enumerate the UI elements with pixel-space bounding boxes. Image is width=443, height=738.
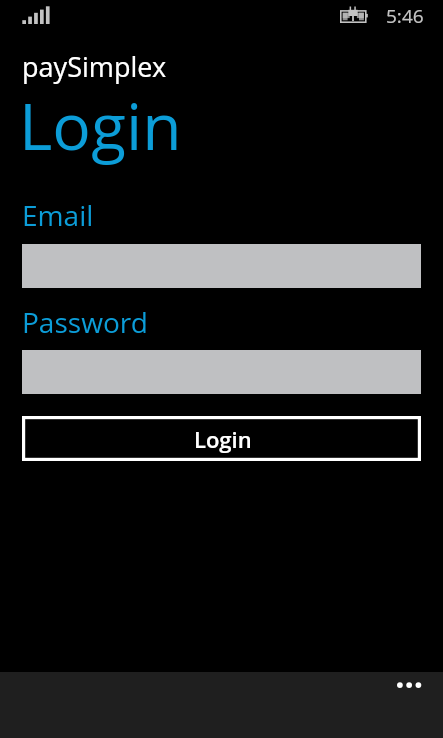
- staticText: Password: [22, 303, 148, 341]
- staticText: Login: [194, 424, 252, 454]
- button[interactable]: Login: [22, 416, 421, 461]
- button[interactable]: More options: [385, 673, 433, 699]
- staticText: paySimplex: [22, 48, 167, 85]
- staticText: Login: [19, 82, 182, 169]
- staticText: 5:46: [386, 3, 424, 29]
- staticText: Email: [22, 196, 94, 234]
